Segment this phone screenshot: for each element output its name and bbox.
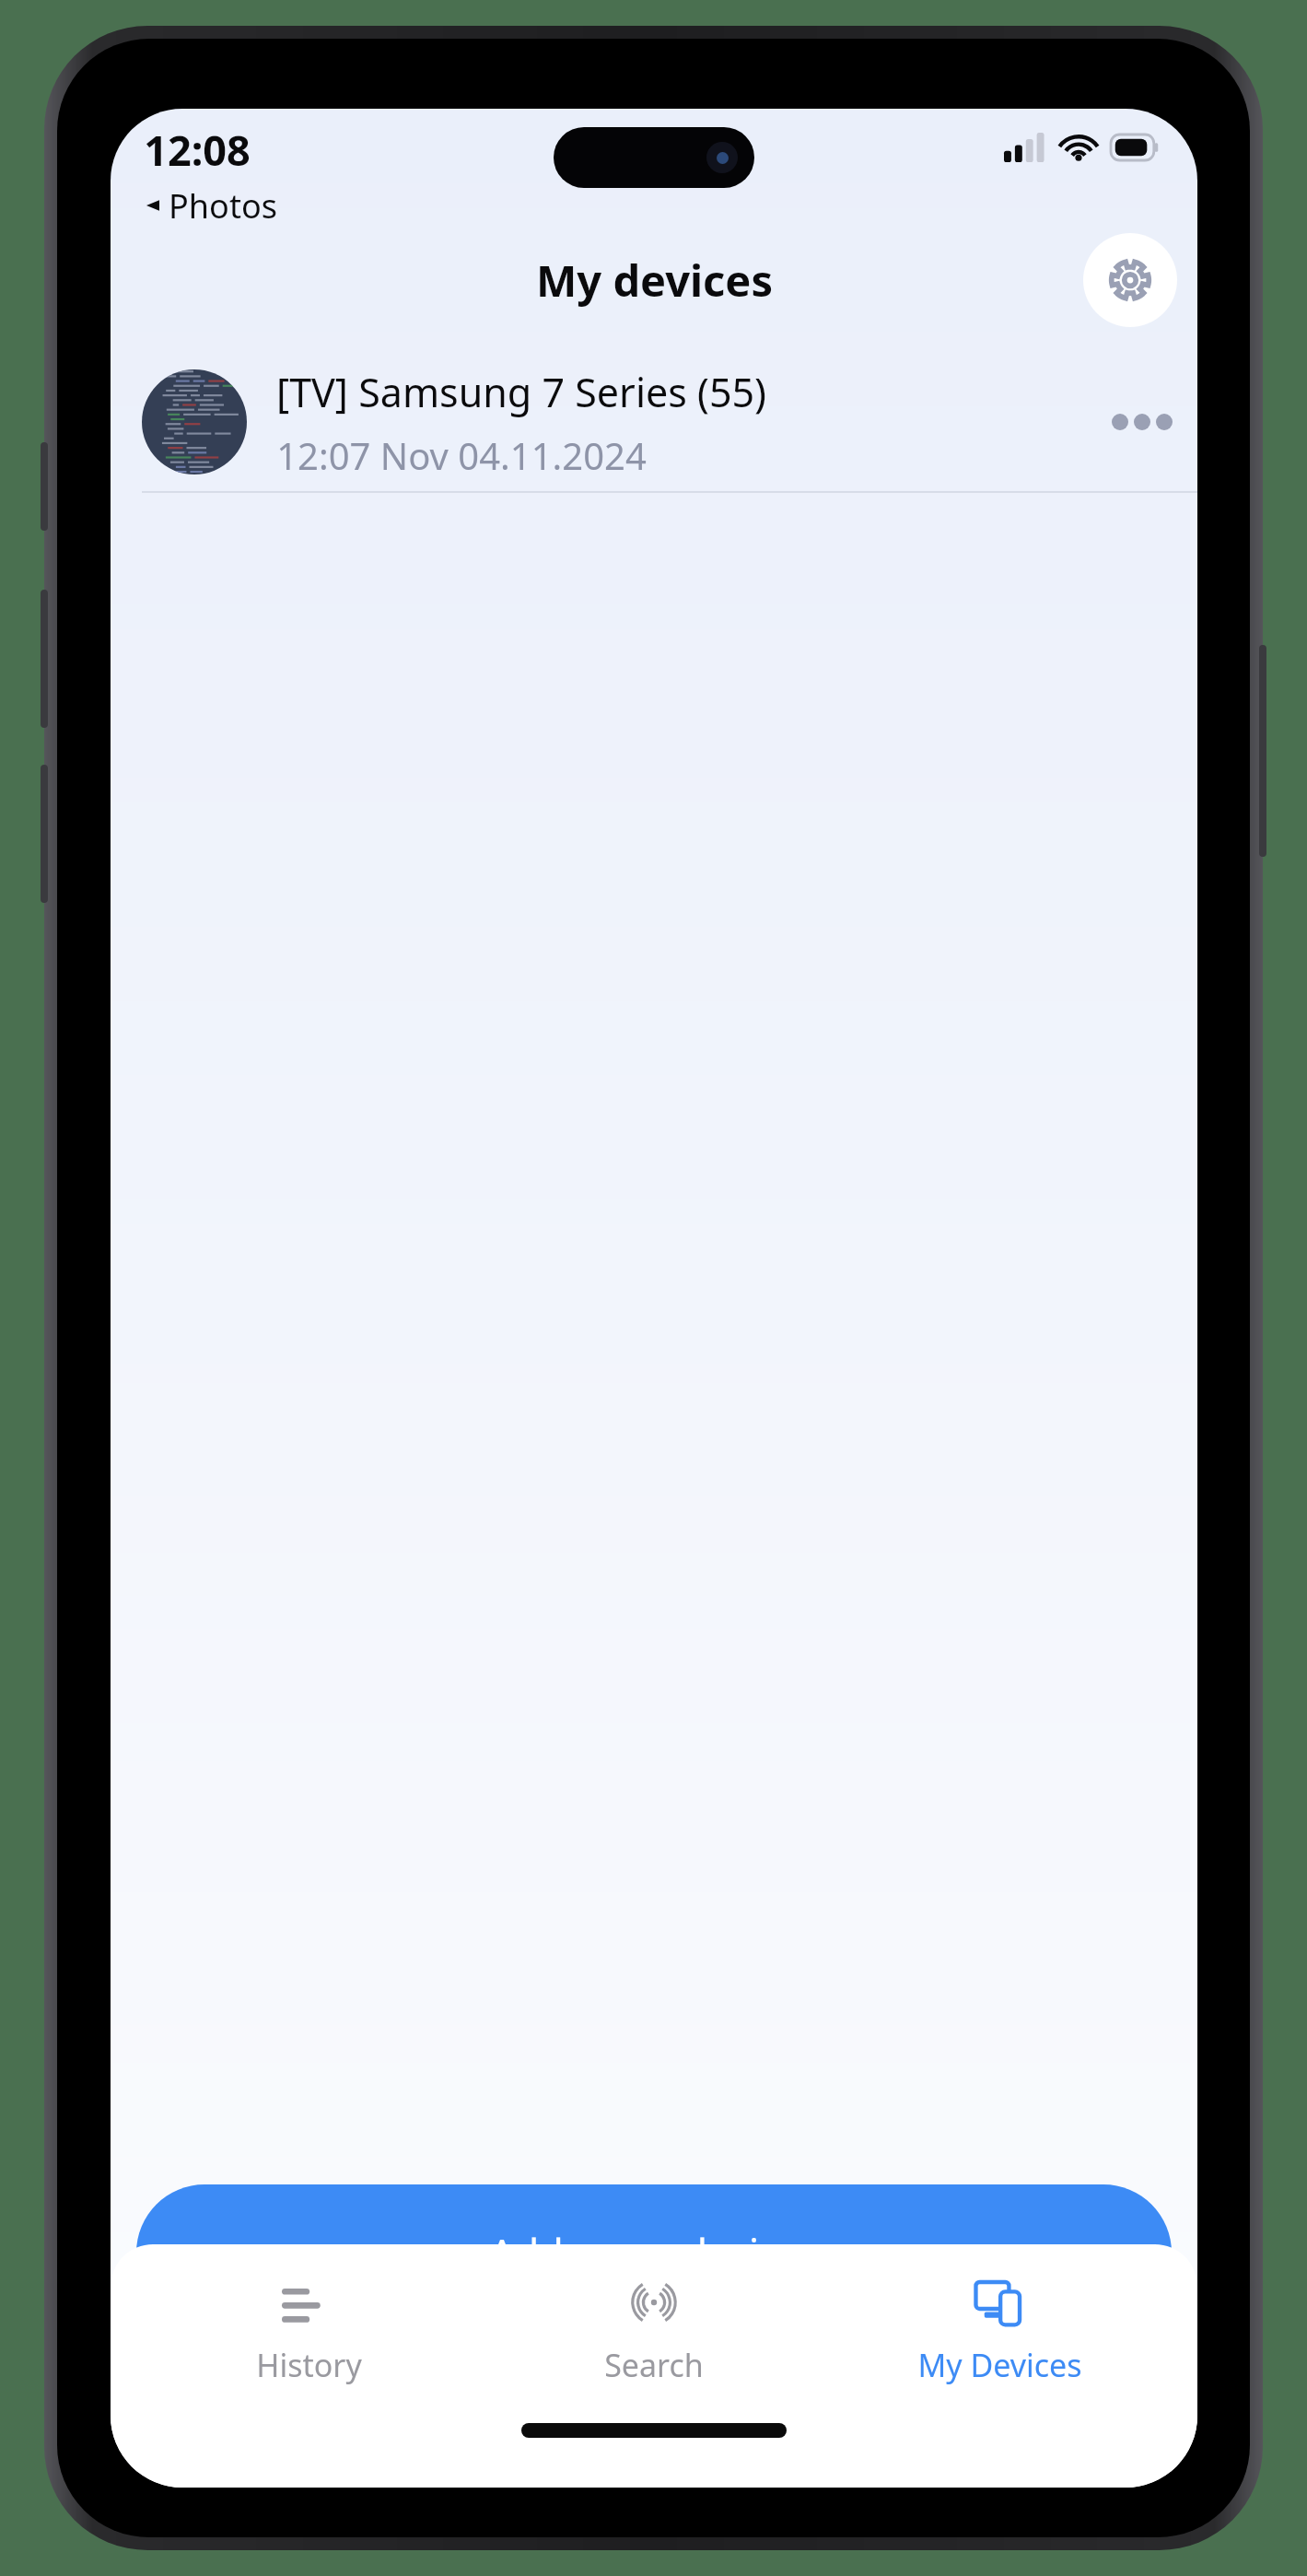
staticText: Photos (169, 183, 277, 227)
button[interactable]: Search (507, 2268, 801, 2392)
button[interactable]: More options (1087, 371, 1197, 473)
button[interactable]: My Devices (852, 2268, 1147, 2392)
button[interactable]: Add more devices (136, 2184, 1172, 2321)
button[interactable]: History (161, 2268, 456, 2392)
button[interactable]: Settings (1083, 233, 1177, 327)
staticText: [TV] Samsung 7 Series (55) (276, 365, 766, 419)
staticText: 12:07 Nov 04.11.2024 (276, 430, 647, 480)
staticText: Search (604, 2344, 704, 2386)
staticText: My Devices (917, 2344, 1082, 2386)
staticText: My devices (536, 251, 773, 310)
staticText: History (256, 2344, 362, 2386)
button[interactable]: [TV] Samsung 7 Series (55) (111, 353, 1197, 491)
staticText: 12:08 (144, 122, 251, 178)
staticText: Add more devices (489, 2226, 820, 2280)
